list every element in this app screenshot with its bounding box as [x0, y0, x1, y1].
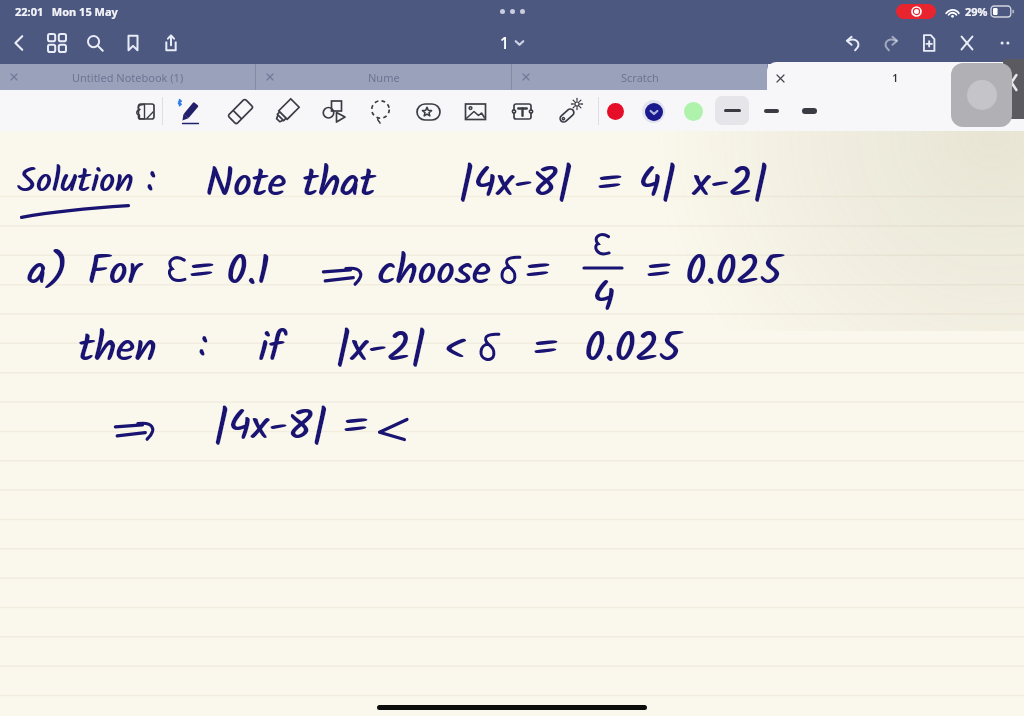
- button[interactable]: Close tab: [771, 69, 789, 87]
- staticText: |x-2|: [336, 317, 427, 382]
- staticText: 0.1: [226, 240, 270, 305]
- button[interactable]: Colour: [596, 90, 634, 131]
- button[interactable]: More options: [986, 22, 1024, 64]
- button[interactable]: Back: [0, 22, 38, 64]
- button[interactable]: Image: [452, 90, 498, 131]
- button[interactable]: Text: [499, 90, 545, 131]
- staticText: Solution: [18, 155, 135, 211]
- staticText: <: [444, 317, 467, 382]
- button[interactable]: Magic: [547, 90, 593, 131]
- button[interactable]: 1: [492, 28, 532, 58]
- staticText: choose: [377, 240, 491, 305]
- button[interactable]: Share: [152, 22, 190, 64]
- staticText: =: [189, 240, 215, 305]
- button[interactable]: Colour: [674, 90, 712, 131]
- staticText: 0.025: [685, 240, 782, 305]
- button[interactable]: Pen: [166, 90, 212, 131]
- button[interactable]: Close tab: [517, 68, 535, 86]
- staticText: 0.025: [585, 317, 682, 382]
- staticText: Untitled Notebook (1): [72, 70, 184, 85]
- staticText: <: [443, 317, 466, 382]
- staticText: :: [146, 152, 155, 209]
- staticText: =: [645, 240, 671, 305]
- staticText: Note that: [206, 152, 377, 217]
- staticText: Nume: [368, 70, 400, 85]
- button[interactable]: Expand panel: [1003, 59, 1024, 119]
- staticText: =: [342, 395, 368, 460]
- staticText: 22:01 Mon 15 May: [15, 4, 118, 19]
- staticText: For: [87, 240, 141, 305]
- button[interactable]: Pages: [38, 22, 76, 64]
- staticText: 0.025: [686, 240, 783, 305]
- button[interactable]: Cut: [948, 22, 986, 64]
- button[interactable]: Shapes: [310, 90, 356, 131]
- button[interactable]: 1: [767, 62, 1024, 91]
- button[interactable]: Bookmark: [114, 22, 152, 64]
- button[interactable]: Page layout: [121, 90, 167, 131]
- staticText: |4x-8|: [459, 152, 573, 217]
- staticText: Scratch: [621, 70, 659, 85]
- staticText: =: [646, 240, 672, 305]
- staticText: 4: [593, 266, 616, 331]
- button[interactable]: Sticker: [405, 90, 451, 131]
- staticText: =: [188, 240, 214, 305]
- staticText: 1: [892, 70, 899, 85]
- staticText: if: [258, 317, 284, 382]
- staticText: =: [597, 152, 623, 217]
- staticText: a): [27, 240, 67, 305]
- button[interactable]: Eraser: [217, 90, 263, 131]
- button[interactable]: Floating window: [951, 63, 1012, 127]
- staticText: 4| x-2|: [638, 152, 768, 217]
- staticText: 4: [592, 266, 615, 331]
- staticText: For: [88, 240, 142, 305]
- button[interactable]: Stroke width: [792, 96, 826, 125]
- staticText: 1: [500, 32, 510, 54]
- staticText: =: [533, 317, 559, 382]
- staticText: Solution: [17, 155, 134, 211]
- staticText: 4| x-2|: [639, 152, 769, 217]
- staticText: =: [343, 395, 369, 460]
- staticText: 29%: [965, 4, 988, 19]
- button[interactable]: Add page: [910, 22, 948, 64]
- button[interactable]: Close tab: [5, 68, 23, 86]
- button[interactable]: Untitled Notebook (1): [0, 64, 256, 90]
- button[interactable]: Close tab: [261, 68, 279, 86]
- staticText: |x-2|: [335, 317, 426, 382]
- staticText: =: [524, 240, 550, 305]
- staticText: |4x-8|: [458, 152, 572, 217]
- button[interactable]: Scratch: [512, 64, 768, 90]
- staticText: choose: [378, 240, 492, 305]
- staticText: =: [596, 152, 622, 217]
- staticText: |4x-8|: [213, 395, 327, 460]
- staticText: then: [78, 317, 157, 382]
- staticText: if: [259, 317, 285, 382]
- staticText: |4x-8|: [214, 395, 328, 460]
- staticText: :: [198, 317, 207, 374]
- button[interactable]: Stroke width: [754, 96, 788, 125]
- button[interactable]: Colour: [634, 90, 672, 131]
- button[interactable]: Highlighter: [263, 90, 309, 131]
- staticText: then: [79, 317, 158, 382]
- button[interactable]: Lasso: [357, 90, 403, 131]
- button[interactable]: Stroke width: [715, 96, 749, 125]
- staticText: 0.1: [227, 240, 271, 305]
- staticText: a): [28, 240, 68, 305]
- button[interactable]: Redo: [872, 22, 910, 64]
- staticText: =: [532, 317, 558, 382]
- staticText: Note that: [205, 152, 376, 217]
- staticText: :: [199, 317, 208, 374]
- staticText: 0.025: [584, 317, 681, 382]
- button[interactable]: Search: [76, 22, 114, 64]
- button[interactable]: Undo: [834, 22, 872, 64]
- button[interactable]: Nume: [256, 64, 512, 90]
- staticText: =: [525, 240, 551, 305]
- staticText: :: [147, 152, 156, 209]
